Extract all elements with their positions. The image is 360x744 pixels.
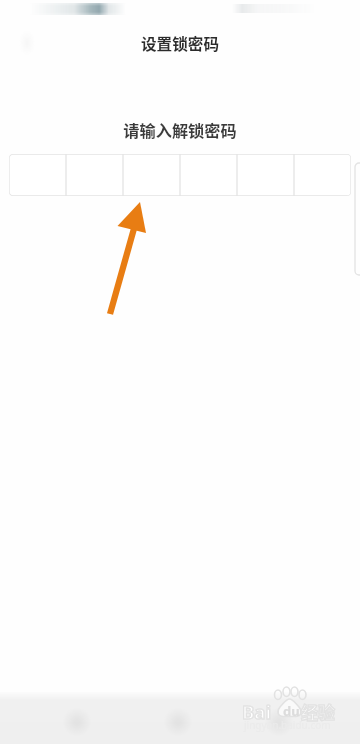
button[interactable]: Back	[57, 702, 97, 742]
button[interactable]: Home	[158, 702, 198, 742]
staticText: Bai	[242, 699, 272, 724]
button[interactable]: Password digit 3	[123, 154, 180, 196]
staticText: 经验	[301, 699, 335, 724]
button[interactable]: Password digit 2	[66, 154, 123, 196]
button[interactable]: Password digit 6	[294, 154, 351, 196]
button[interactable]: Recents	[259, 702, 299, 742]
staticText: du	[283, 702, 300, 720]
staticText: Bai	[242, 699, 272, 724]
staticText: 经验	[301, 699, 335, 724]
button[interactable]: Password digit 4	[180, 154, 237, 196]
staticText: 设置锁密码	[141, 32, 219, 55]
button[interactable]: Password digit 5	[237, 154, 294, 196]
staticText: jingyan.baidu.com	[244, 718, 331, 732]
button[interactable]: Password digit 1	[9, 154, 66, 196]
staticText: 请输入解锁密码	[0, 118, 360, 141]
